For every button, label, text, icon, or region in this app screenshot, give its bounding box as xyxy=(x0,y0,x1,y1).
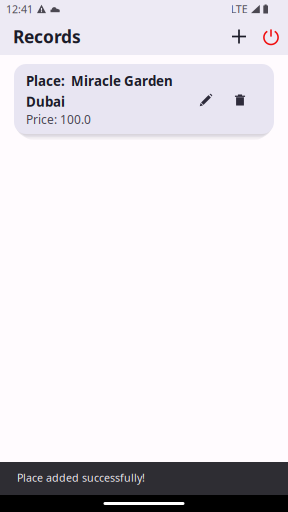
staticText: 12:41 xyxy=(6,2,33,16)
button[interactable]: Edit record xyxy=(192,86,220,114)
staticText: Place: Miracle Garden Dubai xyxy=(26,72,173,110)
button[interactable]: Log out xyxy=(255,20,287,52)
staticText: LTE xyxy=(231,2,248,16)
staticText: Place added successfully! xyxy=(17,470,145,485)
button[interactable]: Add record xyxy=(223,20,255,52)
staticText: Records xyxy=(13,25,81,48)
button[interactable]: Delete record xyxy=(226,86,254,114)
staticText: Price: 100.0 xyxy=(26,111,91,127)
